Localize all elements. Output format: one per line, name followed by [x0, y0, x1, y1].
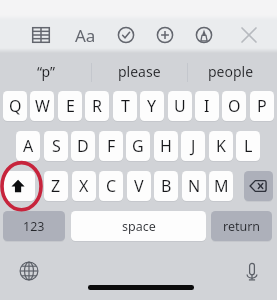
staticText: Y — [147, 95, 157, 117]
button[interactable]: N — [182, 171, 206, 201]
button[interactable]: A — [16, 131, 40, 161]
button[interactable]: F — [99, 131, 123, 161]
staticText: U — [174, 95, 186, 117]
staticText: Aa — [75, 24, 96, 47]
staticText: T — [121, 95, 130, 117]
button[interactable]: J — [181, 131, 205, 161]
staticText: “p” — [37, 62, 56, 81]
staticText: A — [23, 135, 34, 157]
button[interactable]: Dictate — [238, 258, 266, 286]
button[interactable]: D — [71, 131, 95, 161]
button[interactable]: space — [71, 211, 206, 241]
button[interactable]: Y — [140, 91, 164, 121]
staticText: N — [188, 175, 201, 197]
button[interactable]: Z — [44, 171, 68, 201]
staticText: V — [134, 175, 144, 197]
staticText: L — [244, 135, 253, 157]
button[interactable]: Add — [151, 21, 179, 49]
button[interactable]: Close — [235, 21, 263, 49]
staticText: R — [92, 95, 102, 117]
button[interactable]: 123 — [3, 211, 65, 241]
button[interactable]: I — [195, 91, 219, 121]
staticText: people — [208, 62, 254, 81]
button[interactable]: U — [168, 91, 192, 121]
button[interactable]: Q — [3, 91, 27, 121]
button[interactable]: T — [113, 91, 137, 121]
button[interactable]: Aa — [70, 23, 100, 48]
staticText: C — [106, 175, 117, 197]
staticText: O — [228, 95, 241, 117]
staticText: W — [35, 95, 50, 117]
button[interactable]: B — [154, 171, 178, 201]
staticText: space — [122, 218, 156, 235]
button[interactable]: L — [236, 131, 260, 161]
staticText: K — [216, 135, 226, 157]
staticText: J — [191, 135, 196, 157]
button[interactable]: return — [211, 211, 272, 241]
button[interactable]: Table — [27, 21, 55, 49]
staticText: H — [160, 135, 172, 157]
button[interactable]: K — [209, 131, 233, 161]
button[interactable]: X — [72, 171, 96, 201]
staticText: P — [257, 95, 267, 117]
button[interactable]: O — [222, 91, 246, 121]
staticText: return — [223, 218, 261, 235]
staticText: M — [214, 175, 229, 197]
staticText: E — [66, 95, 75, 117]
staticText: Q — [9, 95, 22, 117]
button[interactable]: P — [250, 91, 274, 121]
button[interactable]: S — [44, 131, 68, 161]
staticText: I — [204, 95, 210, 117]
button[interactable]: “p” — [0, 53, 93, 89]
staticText: 123 — [23, 218, 45, 235]
staticText: G — [132, 135, 144, 157]
staticText: Z — [51, 175, 61, 197]
button[interactable]: V — [127, 171, 151, 201]
button[interactable]: C — [99, 171, 123, 201]
button[interactable]: E — [58, 91, 82, 121]
staticText: please — [118, 62, 161, 81]
button[interactable]: W — [30, 91, 54, 121]
staticText: B — [161, 175, 172, 197]
button[interactable]: H — [154, 131, 178, 161]
staticText: X — [79, 175, 89, 197]
button[interactable]: M — [209, 171, 233, 201]
button[interactable]: Backspace — [244, 171, 273, 201]
button[interactable]: R — [85, 91, 109, 121]
button[interactable]: Markup pen — [190, 21, 218, 49]
button[interactable]: people — [185, 53, 277, 89]
staticText: D — [77, 135, 89, 157]
button[interactable]: Shift — [3, 171, 35, 201]
button[interactable]: Confirm — [112, 21, 140, 49]
staticText: F — [107, 135, 116, 157]
button[interactable]: please — [93, 53, 185, 89]
staticText: S — [52, 135, 61, 157]
button[interactable]: Switch keyboard — [15, 257, 43, 285]
button[interactable]: G — [126, 131, 150, 161]
